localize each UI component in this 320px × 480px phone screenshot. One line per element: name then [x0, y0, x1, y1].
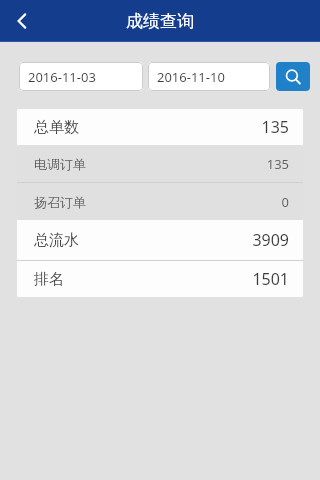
button[interactable]: 2016-11-10: [148, 62, 270, 91]
button[interactable]: 总单数: [17, 109, 303, 145]
button[interactable]: 电调订单: [17, 145, 303, 182]
staticText: 总流水: [34, 231, 79, 250]
staticText: 1501: [252, 268, 289, 290]
button[interactable]: Back: [0, 0, 44, 42]
button[interactable]: 2016-11-03: [19, 62, 143, 91]
staticText: 2016-11-10: [157, 68, 225, 86]
staticText: 成绩查询: [126, 11, 194, 32]
staticText: 总单数: [34, 118, 79, 137]
staticText: 135: [266, 155, 289, 173]
button[interactable]: 扬召订单: [17, 183, 303, 220]
staticText: 135: [261, 116, 289, 138]
staticText: 排名: [34, 270, 64, 289]
staticText: 2016-11-03: [28, 68, 96, 86]
button[interactable]: 排名: [17, 261, 303, 297]
staticText: 0: [281, 193, 289, 211]
staticText: 电调订单: [34, 156, 86, 172]
staticText: 扬召订单: [34, 194, 86, 210]
button[interactable]: 总流水: [17, 220, 303, 260]
button[interactable]: Search: [276, 62, 310, 91]
staticText: 3909: [252, 229, 289, 251]
